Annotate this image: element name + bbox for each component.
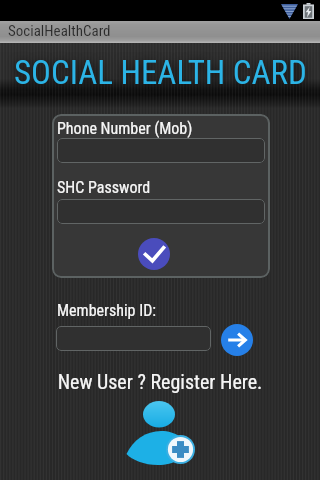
- staticText: SHC Password: [57, 178, 151, 197]
- button[interactable]: New User ? Register Here.: [0, 370, 320, 393]
- staticText: SOCIAL HEALTH CARD: [14, 53, 307, 92]
- button[interactable]: [57, 199, 265, 224]
- staticText: Phone Number (Mob): [57, 119, 193, 138]
- button[interactable]: Go: [221, 324, 253, 356]
- button[interactable]: Register new user: [124, 401, 196, 467]
- button[interactable]: [56, 326, 211, 351]
- staticText: Membership ID:: [57, 301, 157, 320]
- staticText: SocialHealthCard: [8, 22, 111, 40]
- button[interactable]: [57, 138, 265, 163]
- button[interactable]: Submit: [138, 238, 170, 270]
